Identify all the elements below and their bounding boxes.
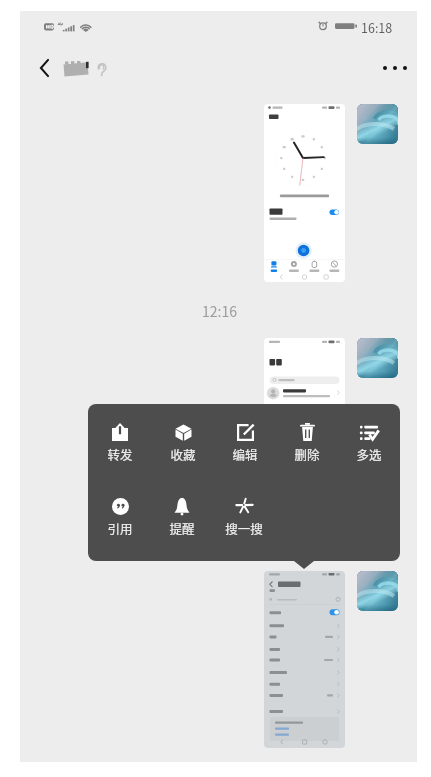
button[interactable]: Contact avatar [357,571,398,611]
button[interactable]: 多选 [338,423,400,463]
staticText: 转发 [107,445,133,463]
button[interactable]: 提醒 [151,497,213,537]
staticText: 16:18 [361,18,393,36]
button[interactable]: Contact avatar [357,338,398,378]
staticText: 搜一搜 [225,519,263,537]
button[interactable]: 编辑 [214,423,276,463]
staticText: 提醒 [169,519,195,537]
button[interactable]: More options [373,47,417,89]
staticText: 删除 [294,445,320,463]
staticText: 12:16 [202,301,237,321]
button[interactable]: 删除 [276,423,338,463]
button[interactable]: 引用 [88,497,151,537]
staticText: 多选 [356,445,382,463]
button[interactable]: 收藏 [151,423,214,463]
button[interactable]: Shared screenshot: settings [264,338,345,448]
button[interactable]: Shared screenshot: account settings [264,571,345,748]
button[interactable]: Shared screenshot: clock app [264,104,345,282]
button[interactable]: Back [28,47,60,89]
staticText: 收藏 [170,445,196,463]
button[interactable]: 转发 [88,423,151,463]
staticText: 编辑 [232,445,258,463]
button[interactable]: 搜一搜 [213,497,275,537]
staticText: 引用 [107,519,133,537]
button[interactable]: Contact avatar [357,104,398,144]
